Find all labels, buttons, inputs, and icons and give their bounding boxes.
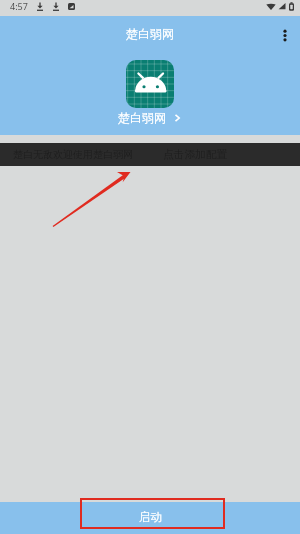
staticText: 启动 [139,510,162,524]
staticText: 4:57 [10,0,28,12]
staticText: 楚白弱网 [118,110,166,125]
staticText: 楚白弱网 [126,26,174,41]
staticText: 楚白无敌欢迎使用楚白弱网 [13,148,133,161]
button[interactable]: More options [274,24,296,46]
button[interactable]: 启动 [0,502,300,534]
button[interactable]: 点击添加配置 [163,148,228,161]
button[interactable]: 楚白弱网 [118,60,182,125]
staticText: 点击添加配置 [163,148,228,161]
